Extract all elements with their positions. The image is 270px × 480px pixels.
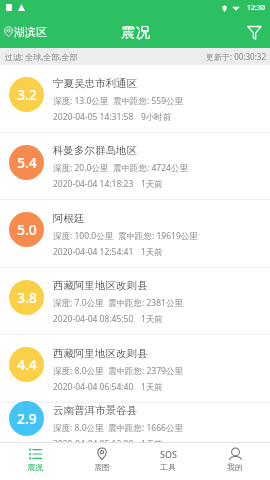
button[interactable]: 5.4 xyxy=(0,133,270,200)
staticText: 1天前 xyxy=(141,381,163,393)
staticText: 云南普洱市景谷县 xyxy=(53,404,137,417)
staticText: 2020-04-04 14:18:23 xyxy=(53,178,134,190)
staticText: 9小时前 xyxy=(141,111,172,123)
staticText: 5.0 xyxy=(17,220,37,239)
staticText: 12:30 xyxy=(247,3,265,13)
staticText: 深度: 7.0公里 xyxy=(53,297,104,309)
button[interactable]: 5.0 xyxy=(0,200,270,268)
staticText: 震中距您: 1666公里 xyxy=(108,422,183,434)
staticText: 西藏阿里地区改则县 xyxy=(53,347,148,360)
staticText: 深度: 8.0公里 xyxy=(53,422,104,434)
staticText: 1天前 xyxy=(141,438,163,443)
staticText: 更新于: 00:30:32 xyxy=(206,51,266,62)
staticText: 深度: 100.0公里 xyxy=(53,230,114,242)
staticText: 2020-04-05 14:31:58 xyxy=(53,111,134,123)
staticText: 1天前 xyxy=(141,178,163,190)
staticText: 湖滨区 xyxy=(14,25,47,39)
staticText: 4.4 xyxy=(17,355,37,374)
staticText: SOS xyxy=(160,448,177,460)
staticText: 震中距您: 19619公里 xyxy=(118,230,198,242)
staticText: 深度: 20.0公里 xyxy=(53,162,109,174)
staticText: 深度: 13.0公里 xyxy=(53,95,109,107)
button[interactable]: Filter xyxy=(242,20,266,44)
staticText: 2020-04-04 12:54:41 xyxy=(53,246,134,258)
button[interactable]: 4.4 xyxy=(0,335,270,403)
button[interactable]: 2.9 xyxy=(0,403,270,442)
staticText: 宁夏吴忠市利通区 xyxy=(53,77,137,90)
staticText: 3.2 xyxy=(17,85,37,104)
staticText: 1天前 xyxy=(141,246,163,258)
button[interactable]: 3.2 xyxy=(0,65,270,133)
staticText: 震况 xyxy=(27,462,43,472)
staticText: 震中距您: 2379公里 xyxy=(108,365,183,377)
staticText: 2020-04-04 05:12:00 xyxy=(53,438,134,443)
staticText: 我的 xyxy=(227,462,243,472)
staticText: 5.4 xyxy=(17,153,37,172)
button[interactable]: 3.8 xyxy=(0,268,270,335)
staticText: 阿根廷 xyxy=(53,212,85,225)
button[interactable]: 我的 xyxy=(203,446,267,478)
staticText: 工具 xyxy=(160,462,176,472)
button[interactable]: 湖滨区 xyxy=(4,25,47,39)
staticText: 2020-04-04 06:54:40 xyxy=(53,381,134,393)
staticText: 1天前 xyxy=(141,313,163,325)
staticText: 西藏阿里地区改则县 xyxy=(53,279,148,292)
staticText: 过滤: 全球,全部,全部 xyxy=(5,51,78,62)
staticText: 2.9 xyxy=(17,409,37,428)
staticText: 深度: 8.0公里 xyxy=(53,365,104,377)
button[interactable]: SOS xyxy=(136,446,200,478)
staticText: 震况 xyxy=(121,23,150,41)
staticText: 科曼多尔群岛地区 xyxy=(53,144,137,157)
staticText: 2020-04-04 08:45:50 xyxy=(53,313,134,325)
staticText: 震中距您: 4724公里 xyxy=(113,162,188,174)
staticText: 3.8 xyxy=(17,288,37,307)
staticText: 震图 xyxy=(94,462,110,472)
staticText: 震中距您: 2381公里 xyxy=(108,297,183,309)
button[interactable]: 震图 xyxy=(70,446,134,478)
button[interactable]: 震况 xyxy=(3,446,67,478)
staticText: 震中距您: 559公里 xyxy=(113,95,184,107)
